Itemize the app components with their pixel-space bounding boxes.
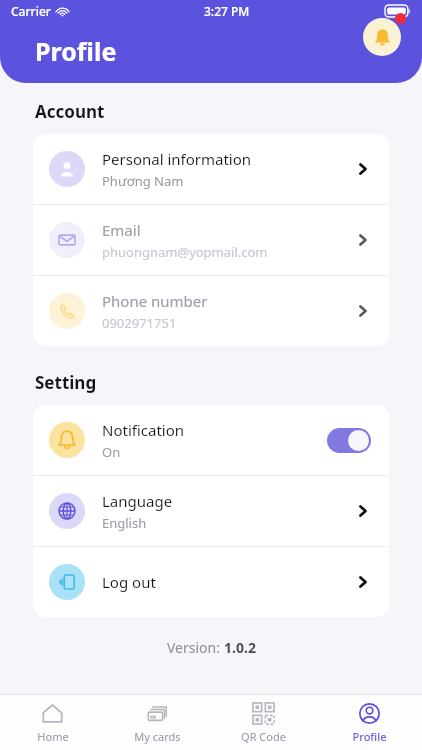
- button[interactable]: Notifications: [363, 13, 406, 56]
- staticText: 3:27 PM: [204, 3, 250, 19]
- button[interactable]: Email: [33, 205, 389, 275]
- button[interactable]: Home: [0, 696, 105, 749]
- staticText: Language: [102, 491, 173, 511]
- staticText: Account: [35, 100, 105, 123]
- button[interactable]: Log out: [33, 547, 389, 617]
- staticText: phuongnam@yopmail.com: [102, 243, 268, 261]
- button[interactable]: Profile: [316, 696, 422, 749]
- staticText: Log out: [102, 572, 156, 592]
- staticText: Setting: [35, 371, 97, 394]
- button[interactable]: Language: [33, 476, 389, 546]
- staticText: Version:: [167, 638, 224, 657]
- staticText: Email: [102, 220, 141, 240]
- staticText: My cards: [134, 729, 181, 744]
- staticText: Home: [37, 729, 69, 744]
- staticText: Carrier: [11, 3, 51, 19]
- button[interactable]: Notification toggle: [327, 428, 371, 453]
- staticText: 1.0.2: [224, 638, 256, 657]
- staticText: Notification: [102, 420, 185, 440]
- staticText: English: [102, 514, 147, 532]
- button[interactable]: Notification: [33, 405, 389, 475]
- staticText: Personal information: [102, 149, 252, 169]
- button[interactable]: Phone number: [33, 276, 389, 346]
- staticText: Profile: [352, 729, 387, 744]
- button[interactable]: My cards: [105, 696, 210, 749]
- staticText: QR Code: [241, 729, 286, 744]
- button[interactable]: Personal information: [33, 134, 389, 204]
- staticText: Phương Nam: [102, 172, 184, 190]
- staticText: On: [102, 443, 121, 461]
- staticText: Profile: [35, 34, 117, 68]
- staticText: 0902971751: [102, 314, 177, 332]
- staticText: Phone number: [102, 291, 208, 311]
- button[interactable]: QR Code: [210, 696, 316, 749]
